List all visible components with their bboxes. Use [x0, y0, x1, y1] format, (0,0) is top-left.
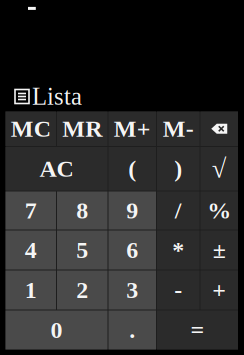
- staticText: 0: [50, 317, 62, 343]
- staticText: 9: [126, 197, 138, 224]
- button[interactable]: M-: [157, 111, 199, 146]
- staticText: =: [190, 317, 204, 343]
- staticText: 4: [25, 237, 37, 263]
- button[interactable]: %: [200, 191, 238, 229]
- button[interactable]: (: [108, 147, 156, 190]
- button[interactable]: 0: [5, 310, 107, 349]
- button[interactable]: -: [157, 270, 199, 309]
- staticText: 2: [76, 277, 88, 303]
- staticText: MC: [11, 115, 51, 142]
- staticText: %: [207, 197, 231, 224]
- button[interactable]: More options: [24, 0, 40, 12]
- button[interactable]: 3: [108, 270, 156, 309]
- staticText: .: [129, 317, 135, 343]
- staticText: (: [128, 155, 136, 182]
- button[interactable]: 5: [57, 230, 107, 269]
- staticText: 3: [126, 277, 138, 303]
- button[interactable]: .: [108, 310, 156, 349]
- button[interactable]: M+: [108, 111, 156, 146]
- staticText: MR: [62, 115, 102, 142]
- staticText: ±: [213, 237, 226, 263]
- button[interactable]: AC: [5, 147, 107, 190]
- button[interactable]: 7: [5, 191, 56, 229]
- button[interactable]: Lista: [14, 85, 82, 107]
- button[interactable]: 4: [5, 230, 56, 269]
- button[interactable]: 2: [57, 270, 107, 309]
- staticText: -: [174, 277, 182, 303]
- staticText: Lista: [32, 83, 82, 110]
- button[interactable]: +: [200, 270, 238, 309]
- button[interactable]: *: [157, 230, 199, 269]
- staticText: AC: [39, 155, 73, 182]
- staticText: /: [175, 197, 182, 224]
- staticText: M-: [163, 115, 194, 142]
- button[interactable]: ): [157, 147, 199, 190]
- button[interactable]: √: [200, 147, 238, 190]
- button[interactable]: 9: [108, 191, 156, 229]
- button[interactable]: 6: [108, 230, 156, 269]
- staticText: 5: [76, 237, 88, 263]
- staticText: *: [172, 237, 184, 263]
- staticText: 1: [25, 277, 37, 303]
- button[interactable]: MR: [57, 111, 107, 146]
- staticText: M+: [114, 115, 151, 142]
- staticText: 6: [126, 237, 138, 263]
- button[interactable]: Delete: [200, 111, 238, 146]
- staticText: 8: [76, 197, 88, 224]
- staticText: √: [212, 154, 227, 183]
- button[interactable]: MC: [5, 111, 56, 146]
- button[interactable]: ±: [200, 230, 238, 269]
- button[interactable]: /: [157, 191, 199, 229]
- button[interactable]: =: [157, 310, 238, 349]
- staticText: +: [212, 277, 226, 303]
- button[interactable]: 8: [57, 191, 107, 229]
- staticText: ): [174, 155, 182, 182]
- staticText: 7: [25, 197, 37, 224]
- button[interactable]: 1: [5, 270, 56, 309]
